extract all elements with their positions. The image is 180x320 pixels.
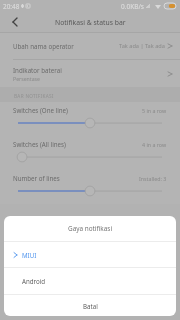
staticText: Switches (All lines): [13, 140, 66, 148]
staticText: 5 in a row: [142, 107, 167, 114]
button[interactable]: Switches (One line): [0, 102, 180, 136]
staticText: Notifikasi & status bar: [55, 18, 126, 27]
button[interactable]: Back: [0, 12, 30, 32]
staticText: Ubah nama operator: [13, 42, 74, 50]
button[interactable]: Ubah nama operator: [0, 33, 180, 59]
button[interactable]: Batal: [4, 295, 176, 316]
staticText: Installed: 3: [139, 175, 167, 182]
staticText: Switches (One line): [13, 106, 68, 114]
button[interactable]: MIUI: [4, 242, 176, 267]
staticText: Android: [22, 277, 46, 285]
button[interactable]: Number of lines: [0, 170, 180, 204]
staticText: 4 in a row: [142, 141, 167, 148]
staticText: Number of lines: [13, 174, 60, 182]
staticText: Batal: [83, 302, 98, 310]
staticText: 0.0KB/s: [121, 2, 144, 11]
staticText: Gaya notifikasi: [68, 224, 113, 233]
button[interactable]: Android: [4, 268, 176, 294]
button[interactable]: Switches (All lines): [0, 136, 180, 170]
staticText: Indikator baterai: [13, 66, 62, 74]
button[interactable]: Indikator baterai: [0, 60, 180, 87]
staticText: 20:48: [3, 2, 20, 11]
staticText: Persentase: [13, 75, 41, 82]
staticText: MIUI: [22, 251, 37, 259]
staticText: BAR NOTIFIKASI: [14, 93, 54, 99]
staticText: Tak ada | Tak ada: [119, 42, 165, 50]
